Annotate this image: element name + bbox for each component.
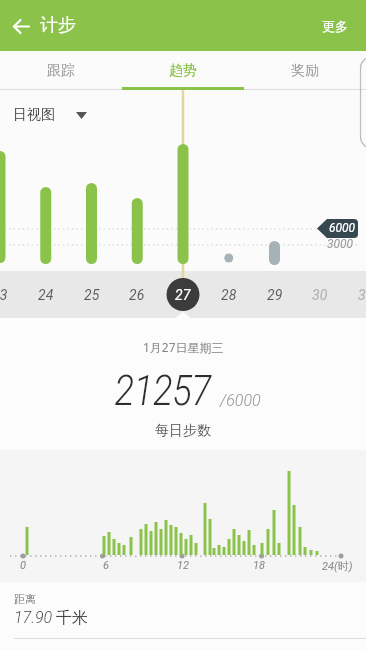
button[interactable]: 25 xyxy=(69,271,115,318)
staticText: 27 xyxy=(175,287,191,303)
button[interactable]: 24 xyxy=(23,271,69,318)
staticText: 6000 xyxy=(329,221,356,235)
staticText: 24(时) xyxy=(322,559,353,573)
button[interactable]: 28 xyxy=(206,271,252,318)
button[interactable]: 31 xyxy=(343,271,366,318)
staticText: 日视图 xyxy=(13,106,55,124)
staticText: 跟踪 xyxy=(47,62,75,80)
staticText: 计步 xyxy=(40,14,76,37)
button[interactable]: 27 xyxy=(160,271,206,318)
staticText: 每日步数 xyxy=(155,422,211,440)
staticText: 26 xyxy=(129,287,145,303)
staticText: 28 xyxy=(221,287,237,303)
button[interactable] xyxy=(14,9,40,43)
staticText: 31 xyxy=(358,287,366,303)
button[interactable]: 趋势 xyxy=(122,51,244,90)
button[interactable]: 29 xyxy=(252,271,298,318)
staticText: 0 xyxy=(20,559,26,572)
staticText: 更多 xyxy=(322,18,348,34)
button[interactable]: 奖励 xyxy=(244,51,366,90)
staticText: 1月27日星期三 xyxy=(143,339,224,355)
staticText: 趋势 xyxy=(169,62,197,80)
button[interactable]: 日视图 xyxy=(13,102,87,128)
staticText: 17.90 千米 xyxy=(14,608,88,628)
staticText: 21257 xyxy=(115,365,211,415)
staticText: 29 xyxy=(267,287,283,303)
staticText: 30 xyxy=(312,287,328,303)
button[interactable]: 23 xyxy=(0,271,23,318)
button[interactable]: 30 xyxy=(297,271,343,318)
staticText: 24 xyxy=(38,287,54,303)
staticText: 12 xyxy=(177,559,189,572)
button[interactable]: 跟踪 xyxy=(0,51,122,90)
button[interactable]: 26 xyxy=(114,271,160,318)
staticText: 18 xyxy=(253,559,265,572)
staticText: 距离 xyxy=(14,592,36,606)
staticText: 奖励 xyxy=(291,62,319,80)
staticText: /6000 xyxy=(220,391,261,410)
staticText: 23 xyxy=(0,287,8,303)
staticText: 25 xyxy=(84,287,100,303)
staticText: 3000 xyxy=(327,237,354,251)
staticText: 6 xyxy=(103,559,109,572)
button[interactable]: 距离 xyxy=(0,582,366,650)
button[interactable]: 更多 xyxy=(318,14,352,38)
